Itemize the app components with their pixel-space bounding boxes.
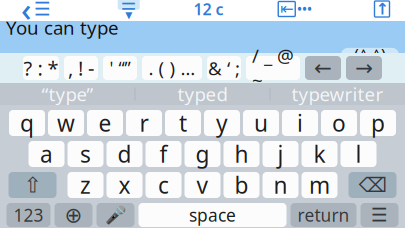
button[interactable]: m — [301, 172, 337, 198]
staticText: d — [117, 139, 131, 169]
button[interactable]: k — [301, 141, 337, 167]
button[interactable]: b — [223, 172, 259, 198]
button[interactable]: ← — [305, 56, 341, 80]
button[interactable]: j — [262, 141, 298, 167]
staticText: space — [189, 203, 236, 226]
button[interactable]: d — [106, 141, 142, 167]
button[interactable]: Insert shortcut — [271, 0, 319, 21]
button[interactable]: typewriter — [270, 83, 404, 105]
button[interactable]: (^ ^) — [341, 48, 399, 62]
button[interactable]: i — [282, 110, 318, 136]
button[interactable]: x — [106, 172, 142, 198]
button[interactable]: f — [145, 141, 181, 167]
staticText: 123 — [13, 203, 43, 226]
staticText: x — [118, 170, 130, 200]
staticText: n — [273, 170, 287, 200]
button[interactable]: & ‘ ; — [207, 56, 241, 80]
staticText: typed — [177, 82, 227, 106]
staticText: i — [297, 108, 303, 138]
button[interactable]: Back to documents — [8, 0, 64, 21]
staticText: ' “” — [109, 56, 130, 79]
staticText: k — [313, 139, 325, 169]
button[interactable]: r — [126, 110, 162, 136]
button[interactable]: c — [145, 172, 181, 198]
button[interactable]: ⌫ — [348, 172, 396, 198]
staticText: u — [254, 108, 268, 138]
staticText: 🎤 — [104, 205, 126, 225]
button[interactable]: , ! - — [64, 56, 98, 80]
staticText: , ! - — [68, 55, 94, 81]
staticText: ⇤ — [280, 0, 293, 18]
staticText: p — [371, 108, 385, 138]
button[interactable]: Share — [367, 0, 397, 21]
staticText: “type” — [41, 82, 93, 106]
button[interactable]: space — [138, 203, 286, 227]
button[interactable]: o — [321, 110, 357, 136]
button[interactable]: w — [48, 110, 84, 136]
staticText: ⌫ — [358, 174, 386, 196]
staticText: return — [297, 203, 349, 226]
staticText: ↑ — [375, 0, 388, 18]
button[interactable]: t — [165, 110, 201, 136]
staticText: z — [80, 170, 91, 200]
button[interactable]: g — [184, 141, 220, 167]
button[interactable]: z — [67, 172, 103, 198]
button[interactable]: typed — [135, 83, 269, 105]
staticText: h — [234, 139, 248, 169]
staticText: e — [98, 108, 111, 138]
staticText: a — [40, 139, 53, 169]
button[interactable]: e — [87, 110, 123, 136]
button[interactable]: l — [340, 141, 376, 167]
button[interactable]: p — [360, 110, 396, 136]
button[interactable]: Hide keyboard — [112, 0, 146, 21]
button[interactable]: u — [243, 110, 279, 136]
staticText: ⊕ — [64, 203, 82, 227]
staticText: t — [179, 108, 187, 138]
button[interactable]: q — [9, 110, 45, 136]
staticText: l — [355, 139, 361, 169]
staticText: (^ ^) — [354, 44, 386, 65]
staticText: j — [277, 139, 283, 169]
staticText: 12 c — [193, 0, 223, 20]
staticText: m — [309, 170, 330, 200]
button[interactable]: h — [223, 141, 259, 167]
staticText: w — [57, 108, 75, 138]
staticText: b — [234, 170, 248, 200]
button[interactable]: ⊕ — [54, 203, 92, 227]
button[interactable]: y — [204, 110, 240, 136]
staticText: y — [216, 108, 228, 138]
button[interactable]: . ( ) … — [142, 56, 202, 80]
button[interactable]: ☰ — [360, 203, 398, 227]
staticText: You can type — [6, 15, 119, 40]
button[interactable]: ? : * — [23, 56, 59, 80]
staticText: v — [196, 170, 208, 200]
button[interactable]: a — [28, 141, 64, 167]
staticText: ••• — [297, 1, 312, 17]
staticText: / _ @ ~ — [252, 43, 294, 93]
button[interactable]: 123 — [6, 203, 50, 227]
button[interactable]: ⇧ — [8, 172, 56, 198]
staticText: ▼ — [125, 10, 132, 20]
button[interactable]: return — [290, 203, 356, 227]
button[interactable]: ' “” — [103, 56, 137, 80]
staticText: . ( ) … — [148, 56, 195, 80]
staticText: ☰ — [371, 204, 388, 226]
staticText: → — [355, 56, 373, 80]
staticText: f — [159, 139, 167, 169]
button[interactable]: v — [184, 172, 220, 198]
button[interactable]: “type” — [0, 83, 134, 105]
staticText: & ‘ ; — [208, 56, 240, 80]
staticText: q — [20, 108, 34, 138]
staticText: r — [139, 108, 148, 138]
button[interactable]: n — [262, 172, 298, 198]
button[interactable]: 🎤 — [96, 203, 134, 227]
staticText: ← — [314, 56, 332, 80]
staticText: ☰ — [121, 0, 137, 14]
button[interactable]: / _ @ ~ — [246, 56, 300, 80]
button[interactable]: s — [67, 141, 103, 167]
staticText: ☰ — [34, 0, 51, 20]
staticText: c — [158, 170, 169, 200]
staticText: s — [80, 139, 91, 169]
button[interactable]: → — [346, 56, 382, 80]
staticText: o — [332, 108, 346, 138]
